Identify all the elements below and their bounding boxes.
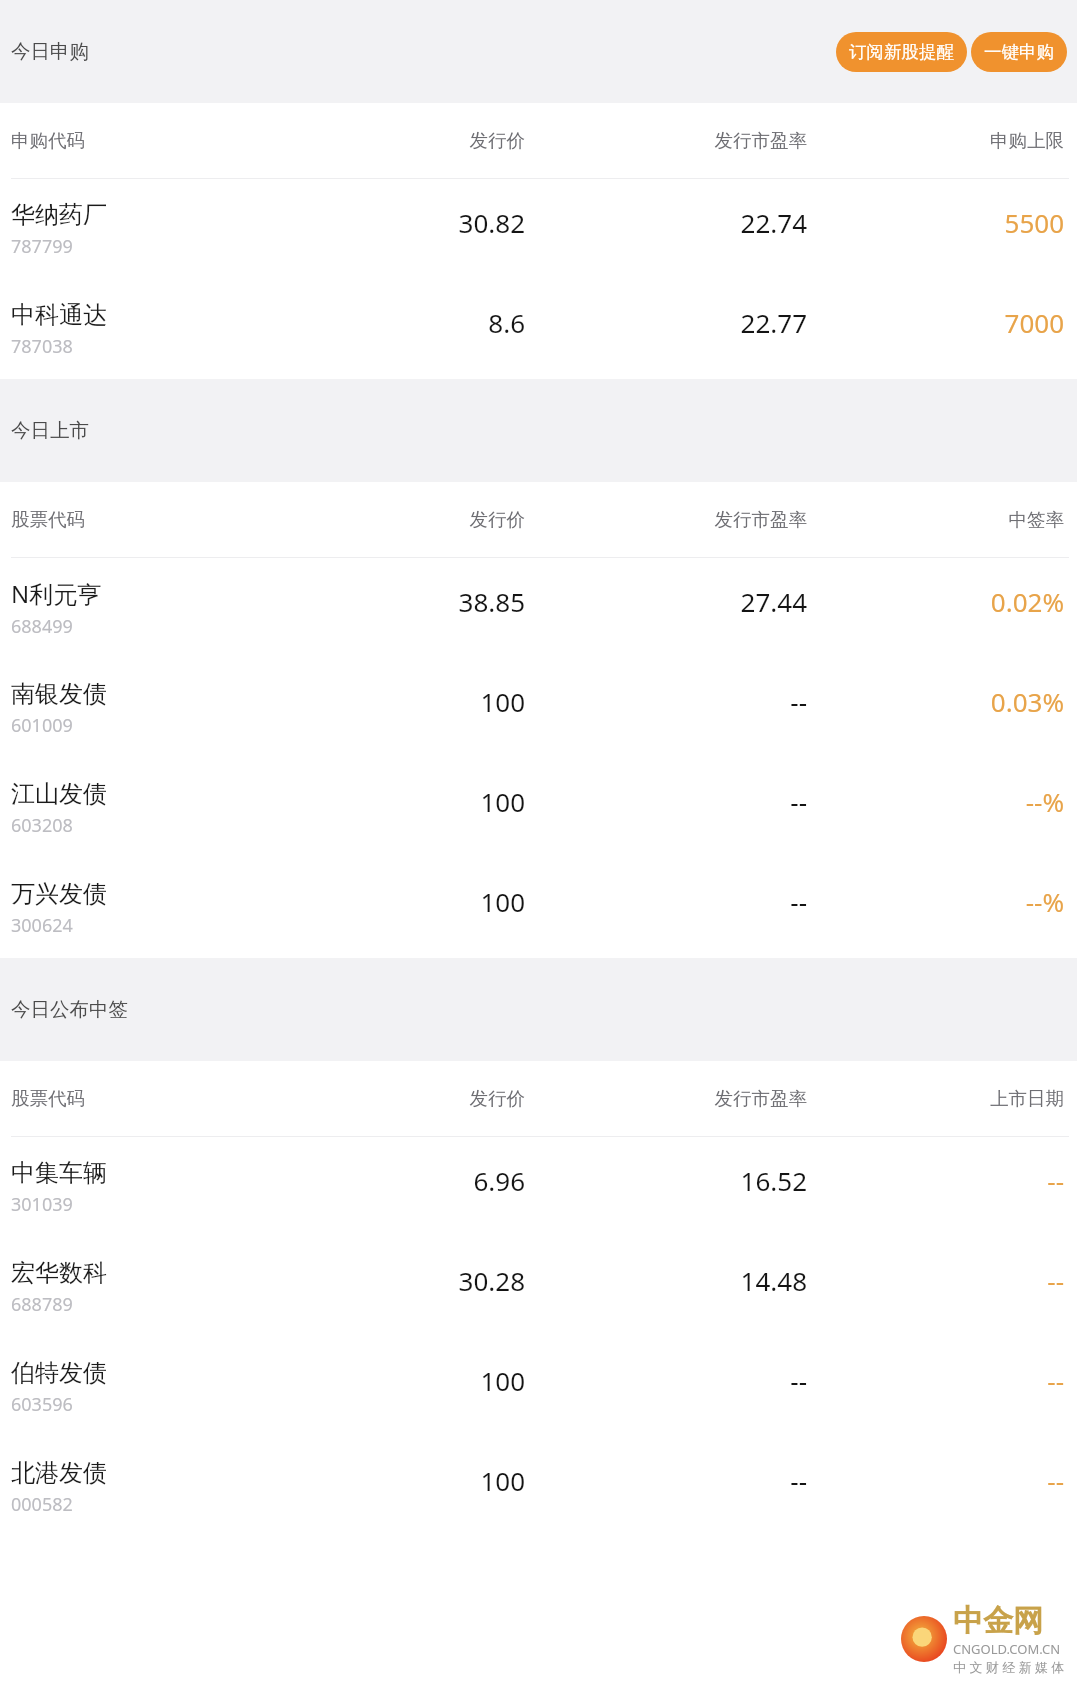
staticText: 今日公布中签 [11,997,128,1022]
button[interactable]: 订阅新股提醒 [836,32,967,72]
staticText: 688789 [11,1292,73,1317]
staticText: 100 [480,884,525,919]
staticText: 订阅新股提醒 [849,41,954,63]
button[interactable]: 华纳药厂 [0,179,1077,279]
staticText: -- [1047,1363,1064,1398]
staticText: 27.44 [740,584,807,619]
staticText: 伯特发债 [11,1358,107,1388]
staticText: 300624 [11,913,73,938]
staticText: 787799 [11,234,73,259]
staticText: 22.77 [740,305,807,340]
staticText: 000582 [11,1492,73,1517]
staticText: 今日上市 [11,418,89,443]
staticText: 发行市盈率 [525,508,807,531]
staticText: 今日申购 [11,39,89,64]
staticText: 发行市盈率 [525,129,807,152]
staticText: --% [1025,784,1064,819]
button[interactable]: 中集车辆 [0,1137,1077,1237]
staticText: CNGOLD.COM.CN [953,1640,1061,1658]
staticText: N利元亨 [11,577,102,610]
staticText: 中签率 [807,508,1064,531]
button[interactable]: 江山发债 [0,758,1077,858]
staticText: 601009 [11,713,73,738]
staticText: 发行价 [280,1087,525,1110]
staticText: 22.74 [740,205,807,240]
staticText: -- [790,884,807,919]
staticText: -- [1047,1163,1064,1198]
button[interactable]: 北港发债 [0,1437,1077,1537]
staticText: 787038 [11,334,73,359]
button[interactable]: N利元亨 [0,558,1077,658]
staticText: 股票代码 [11,508,280,531]
staticText: 0.03% [990,684,1064,719]
staticText: 6.96 [473,1163,525,1198]
staticText: 发行价 [280,129,525,152]
staticText: -- [790,1363,807,1398]
staticText: 38.85 [458,584,525,619]
staticText: 一键申购 [984,41,1054,63]
staticText: 申购上限 [807,129,1064,152]
staticText: 603596 [11,1392,73,1417]
button[interactable]: 中科通达 [0,279,1077,379]
staticText: 万兴发债 [11,879,107,909]
staticText: -- [1047,1463,1064,1498]
staticText: 14.48 [740,1263,807,1298]
staticText: 中科通达 [11,300,107,330]
staticText: 南银发债 [11,679,107,709]
staticText: 603208 [11,813,73,838]
staticText: --% [1025,884,1064,919]
staticText: 301039 [11,1192,73,1217]
staticText: 中金网 [953,1602,1043,1640]
staticText: 江山发债 [11,779,107,809]
staticText: 100 [480,784,525,819]
staticText: 发行市盈率 [525,1087,807,1110]
button[interactable]: 一键申购 [971,32,1067,72]
staticText: -- [790,684,807,719]
staticText: 北港发债 [11,1458,107,1488]
staticText: 16.52 [740,1163,807,1198]
staticText: 8.6 [488,305,525,340]
staticText: 100 [480,1463,525,1498]
button[interactable]: 万兴发债 [0,858,1077,958]
button[interactable]: 南银发债 [0,658,1077,758]
staticText: 100 [480,684,525,719]
staticText: 7000 [1004,305,1064,340]
staticText: 中集车辆 [11,1158,107,1188]
staticText: 申购代码 [11,129,280,152]
staticText: 股票代码 [11,1087,280,1110]
staticText: 上市日期 [807,1087,1064,1110]
staticText: 100 [480,1363,525,1398]
staticText: -- [790,784,807,819]
staticText: 30.82 [458,205,525,240]
staticText: 中 文 财 经 新 媒 体 [953,1658,1065,1676]
staticText: 0.02% [990,584,1064,619]
staticText: 华纳药厂 [11,200,107,230]
staticText: 发行价 [280,508,525,531]
staticText: 30.28 [458,1263,525,1298]
staticText: 5500 [1004,205,1064,240]
staticText: -- [790,1463,807,1498]
staticText: 宏华数科 [11,1258,107,1288]
button[interactable]: 伯特发债 [0,1337,1077,1437]
button[interactable]: 宏华数科 [0,1237,1077,1337]
staticText: -- [1047,1263,1064,1298]
staticText: 688499 [11,614,73,639]
